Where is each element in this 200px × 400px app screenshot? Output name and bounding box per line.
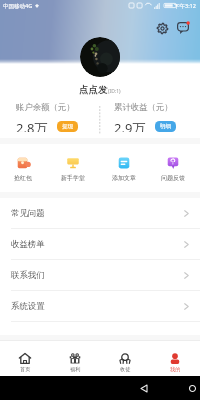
button[interactable]: Home [92, 376, 200, 400]
button[interactable]: Messages [175, 20, 191, 36]
staticText: 添加文章 [112, 174, 136, 182]
button[interactable]: 福利 [50, 341, 100, 376]
button[interactable]: 首页 [0, 341, 50, 376]
staticText: 我的 [170, 366, 181, 373]
button[interactable]: 收益榜单 [0, 229, 200, 260]
button[interactable]: 问题反馈 [151, 157, 195, 182]
staticText: (ID:1) [108, 88, 121, 95]
staticText: 抢红包 [14, 174, 32, 182]
staticText: 首页 [20, 366, 31, 373]
button[interactable]: 新手学堂 [51, 157, 95, 182]
staticText: 新手学堂 [61, 174, 85, 182]
staticText: 累计收益（元） [114, 102, 173, 113]
staticText: 系统设置 [11, 301, 45, 312]
button[interactable]: 抢红包 [1, 157, 45, 182]
staticText: 点点发 [79, 84, 108, 96]
staticText: 收徒 [120, 366, 131, 373]
staticText: 2.8万 [16, 119, 48, 132]
button[interactable]: Settings [154, 20, 170, 36]
staticText: 联系我们 [11, 270, 45, 281]
button[interactable]: 我的 [150, 341, 200, 376]
button[interactable]: Recent apps [139, 376, 200, 400]
button[interactable]: 提现 [57, 121, 78, 132]
staticText: 提现 [62, 123, 73, 130]
button[interactable]: 联系我们 [0, 260, 200, 291]
staticText: 收益榜单 [11, 239, 45, 250]
staticText: 问题反馈 [161, 174, 185, 182]
button[interactable]: 明细 [155, 121, 176, 132]
staticText: 常见问题 [11, 208, 45, 219]
staticText: 福利 [70, 366, 81, 373]
button[interactable]: 系统设置 [0, 291, 200, 322]
button[interactable]: 收徒 [100, 341, 150, 376]
button[interactable]: 添加文章 [102, 157, 146, 182]
staticText: 2.9万 [114, 119, 146, 132]
staticText: 下午3:12 [174, 2, 196, 10]
button[interactable]: 常见问题 [0, 198, 200, 229]
staticText: 中国移动4G [3, 2, 33, 10]
button[interactable]: Profile avatar [80, 37, 120, 77]
button[interactable]: Back [44, 376, 200, 400]
staticText: 明细 [160, 123, 171, 130]
staticText: 账户余额（元） [16, 102, 75, 113]
